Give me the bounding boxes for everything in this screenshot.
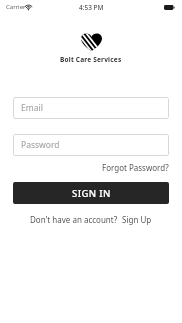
button[interactable]: Sign Up: [122, 214, 152, 225]
button[interactable]: Forgot Password?: [13, 162, 169, 173]
staticText: Password: [21, 139, 60, 151]
staticText: Bolt Care Services: [60, 55, 122, 64]
staticText: Forgot Password?: [102, 162, 169, 173]
staticText: Don't have an account?: [30, 214, 118, 225]
button[interactable]: Email: [13, 97, 169, 119]
staticText: Email: [21, 102, 43, 114]
staticText: Sign Up: [122, 214, 152, 225]
staticText: SIGN IN: [72, 187, 111, 200]
staticText: 4:53 PM: [79, 3, 104, 12]
button[interactable]: Password: [13, 134, 169, 156]
staticText: Carrier: [6, 3, 26, 11]
button[interactable]: SIGN IN: [13, 182, 169, 204]
